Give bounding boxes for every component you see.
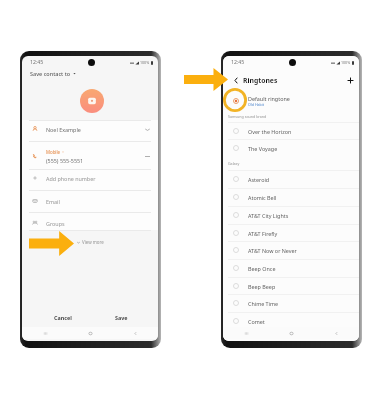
button[interactable]: Default ringtone bbox=[231, 93, 359, 108]
button[interactable]: Add photo bbox=[80, 89, 104, 113]
button[interactable]: Asteroid bbox=[223, 170, 359, 188]
staticText: Save bbox=[115, 314, 128, 321]
staticText: Noel Example bbox=[46, 126, 81, 133]
staticText: 100% bbox=[341, 60, 351, 65]
button[interactable]: Save contact to bbox=[30, 68, 158, 79]
staticText: 12:45 bbox=[30, 58, 44, 65]
button[interactable]: Cancel bbox=[48, 313, 78, 322]
staticText: Galaxy bbox=[228, 161, 240, 166]
staticText: Add phone number bbox=[46, 175, 96, 182]
button[interactable]: Groups bbox=[32, 217, 150, 229]
button[interactable]: Back bbox=[113, 327, 158, 339]
staticText: AT&T City Lights bbox=[248, 212, 289, 219]
button[interactable]: Recent apps bbox=[223, 327, 269, 339]
staticText: Default ringtone bbox=[248, 95, 290, 102]
button[interactable]: Over the Horizon bbox=[223, 122, 359, 140]
staticText: View more bbox=[82, 239, 104, 245]
staticText: Asteroid bbox=[248, 176, 270, 183]
staticText: The Voyage bbox=[248, 145, 278, 152]
button[interactable]: Home bbox=[68, 327, 113, 339]
staticText: 12:45 bbox=[231, 58, 245, 65]
staticText: Cancel bbox=[54, 314, 72, 321]
staticText: Mobile bbox=[46, 149, 61, 155]
button[interactable]: Chime Time bbox=[223, 294, 359, 312]
button[interactable]: Noel Example bbox=[32, 123, 150, 135]
button[interactable]: The Voyage bbox=[223, 139, 359, 157]
staticText: (555) 555-5551 bbox=[46, 157, 84, 164]
button[interactable]: Save bbox=[106, 313, 136, 322]
button[interactable]: Back bbox=[231, 75, 241, 85]
button[interactable]: Email bbox=[32, 195, 150, 207]
staticText: Beep Once bbox=[248, 265, 276, 272]
staticText: Beep Beep bbox=[248, 283, 276, 290]
staticText: Atomic Bell bbox=[248, 194, 277, 201]
button[interactable]: Beep Once bbox=[223, 259, 359, 277]
button[interactable]: AT&T Firefly bbox=[223, 224, 359, 242]
button[interactable]: Home bbox=[269, 327, 314, 339]
staticText: Chime Time bbox=[248, 300, 279, 307]
button[interactable]: AT&T Now or Never bbox=[223, 241, 359, 259]
button[interactable]: View more bbox=[22, 235, 158, 248]
button[interactable]: Back bbox=[314, 327, 359, 339]
staticText: Over the Horizon bbox=[248, 128, 292, 135]
button[interactable]: Add ringtone bbox=[345, 75, 355, 85]
staticText: Email bbox=[46, 198, 60, 205]
staticText: Samsung sound brand bbox=[228, 114, 267, 119]
button[interactable]: Atomic Bell bbox=[223, 188, 359, 206]
staticText: Groups bbox=[46, 220, 65, 227]
staticText: AT&T Firefly bbox=[248, 230, 278, 237]
button[interactable]: Beep Beep bbox=[223, 277, 359, 295]
button[interactable]: AT&T City Lights bbox=[223, 206, 359, 224]
staticText: Old Habit bbox=[248, 102, 264, 107]
button[interactable]: Mobile bbox=[32, 144, 150, 168]
button[interactable]: Add phone number bbox=[32, 172, 150, 184]
staticText: 100% bbox=[140, 60, 150, 65]
staticText: Comet bbox=[248, 318, 265, 325]
button[interactable]: Comet bbox=[223, 312, 359, 330]
staticText: Ringtones bbox=[243, 76, 278, 85]
staticText: Save contact to bbox=[30, 70, 71, 77]
staticText: AT&T Now or Never bbox=[248, 247, 297, 254]
button[interactable]: Recent apps bbox=[22, 327, 68, 339]
